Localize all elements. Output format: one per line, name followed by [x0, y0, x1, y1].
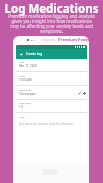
staticText: Dose (mg) — [19, 101, 31, 104]
staticText: Mar 17, 2020 — [19, 64, 37, 68]
button[interactable]: Add medication — [83, 92, 86, 95]
staticText: Any notes you want to keep for reference — [19, 122, 74, 126]
button[interactable]: Medication — [16, 86, 87, 100]
staticText: 10:30 AM — [19, 78, 32, 82]
staticText: Clonazepam — [19, 92, 36, 96]
staticText: 1.0 — [19, 105, 24, 109]
staticText: Medication — [19, 88, 32, 91]
staticText: Log Medications — [0, 1, 103, 17]
button[interactable]: Edit medication — [78, 92, 81, 95]
button[interactable]: Back — [18, 51, 24, 57]
button[interactable]: Dose (mg) — [16, 99, 87, 113]
staticText: Premium medication logging and analysis … — [8, 13, 95, 34]
staticText: Create Log — [26, 52, 43, 56]
button[interactable]: Date — [16, 58, 87, 72]
staticText: Premium Feature — [58, 37, 95, 43]
button[interactable]: Time — [16, 72, 87, 86]
button[interactable]: Note — [16, 113, 87, 133]
staticText: Date — [19, 60, 25, 63]
staticText: Time — [19, 74, 25, 77]
staticText: Note — [19, 115, 25, 118]
